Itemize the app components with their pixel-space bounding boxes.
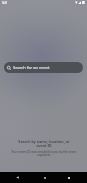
- button[interactable]: Search for an event: [4, 62, 83, 73]
- button[interactable]: Recent apps: [60, 172, 77, 183]
- staticText: Search by name, location, or event ID: [18, 139, 70, 149]
- button[interactable]: Back: [9, 172, 26, 183]
- staticText: 9:41: [2, 1, 8, 5]
- staticText: Your event ID was emailed to you by the …: [9, 150, 79, 157]
- button[interactable]: Home: [36, 172, 53, 183]
- staticText: Search for an event: [13, 65, 50, 70]
